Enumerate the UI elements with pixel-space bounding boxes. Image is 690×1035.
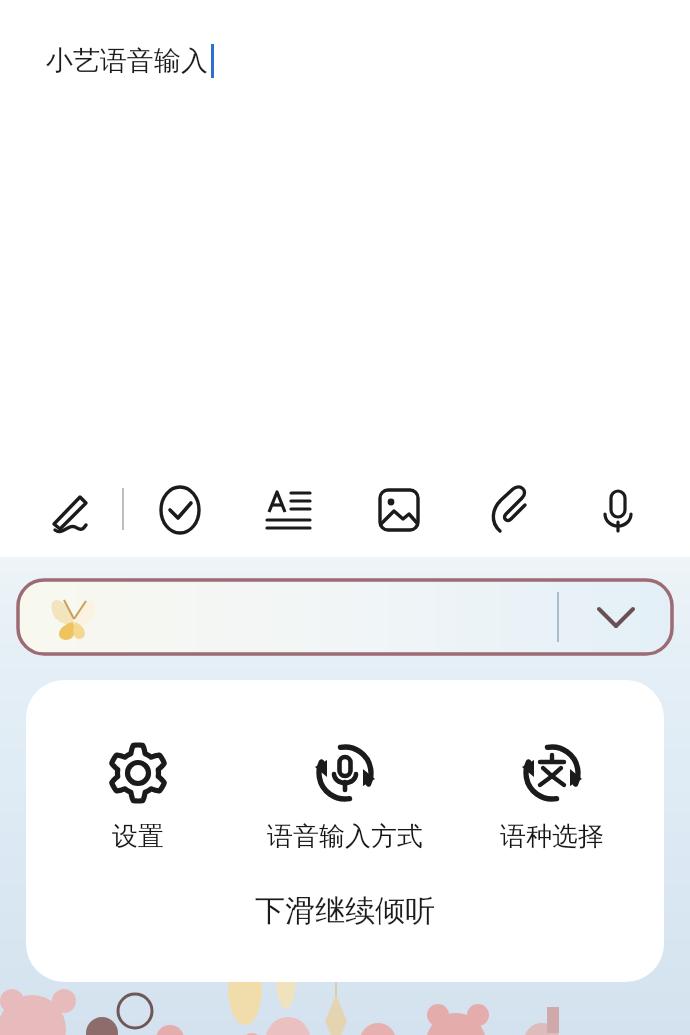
button[interactable]: Confirm	[148, 478, 212, 542]
button[interactable]: Handwriting	[38, 478, 102, 542]
button[interactable]: Settings	[43, 738, 233, 853]
button[interactable]: Voice input	[586, 478, 650, 542]
button[interactable]: Language selection	[457, 738, 647, 853]
button[interactable]: Voice input method	[250, 738, 440, 853]
other: Settings	[103, 738, 173, 808]
staticText: 语音输入方式	[267, 820, 423, 853]
other: Language selection	[517, 738, 587, 808]
staticText: 语种选择	[500, 820, 604, 853]
button[interactable]: Attach file	[476, 478, 540, 542]
other: Voice input method	[310, 738, 380, 808]
button[interactable]: 下滑继续倾听	[255, 892, 435, 930]
button[interactable]	[16, 578, 674, 656]
staticText: 小艺语音输入	[46, 44, 208, 78]
button[interactable]: Text format	[257, 478, 321, 542]
button[interactable]: Insert image	[367, 478, 431, 542]
staticText: 设置	[112, 820, 164, 853]
